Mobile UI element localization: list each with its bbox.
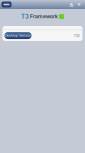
staticText: Desktop Version [5,33,31,37]
staticText: Framework [30,13,58,19]
button[interactable]: Share [69,2,74,7]
button[interactable]: Desktop Version [4,32,31,39]
button[interactable]: Back [1,1,11,7]
staticText: T3 [21,13,29,20]
button[interactable]: Bookmarks [76,2,81,7]
staticText: Top [73,33,79,38]
button[interactable]: Top [72,33,80,38]
